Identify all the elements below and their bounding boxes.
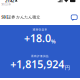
- staticText: %: [51, 38, 56, 45]
- staticText: +1,815,924: [10, 57, 64, 71]
- staticText: SBI証券 かんたん積立: [1, 14, 40, 20]
- button[interactable]: Chat support: [70, 12, 79, 21]
- staticText: +18.0: [24, 31, 51, 45]
- staticText: 円: [65, 64, 70, 71]
- staticText: 累積評価損益: [31, 54, 49, 58]
- staticText: 通期収益率: [32, 28, 47, 31]
- staticText: 21:42: [5, 0, 14, 3]
- staticText: SBI証券: [1, 2, 11, 6]
